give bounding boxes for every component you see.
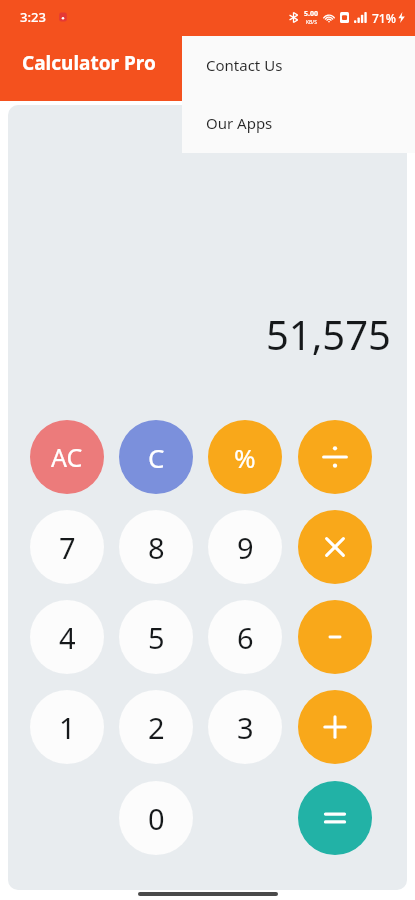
staticText: 7	[59, 528, 76, 567]
staticText: 1	[59, 708, 76, 747]
button[interactable]: 0	[119, 781, 193, 855]
button[interactable]: Multiply	[298, 510, 372, 584]
button[interactable]: C	[119, 420, 193, 494]
button[interactable]: Our Apps	[182, 94, 415, 152]
staticText: 6	[237, 618, 254, 657]
button[interactable]: Divide	[298, 420, 372, 494]
button[interactable]: 9	[208, 510, 282, 584]
staticText: 4	[59, 618, 76, 657]
staticText: Calculator Pro	[22, 50, 156, 76]
staticText: %	[234, 440, 256, 475]
button[interactable]: 8	[119, 510, 193, 584]
staticText: 71%	[372, 10, 396, 26]
staticText: Contact Us	[206, 55, 283, 75]
button[interactable]: Equals	[298, 781, 372, 855]
button[interactable]: 3	[208, 690, 282, 764]
button[interactable]: 4	[30, 600, 104, 674]
staticText: 2	[148, 708, 165, 747]
staticText: 51,575	[265, 307, 391, 361]
staticText: 5	[148, 618, 165, 657]
button[interactable]: 1	[30, 690, 104, 764]
staticText: 3:23	[20, 8, 46, 26]
button[interactable]: 7	[30, 510, 104, 584]
staticText: C	[148, 440, 165, 475]
button[interactable]: 5	[119, 600, 193, 674]
button[interactable]: AC	[30, 420, 104, 494]
staticText: 5.00	[304, 9, 318, 19]
staticText: 0	[148, 799, 165, 838]
button[interactable]: 6	[208, 600, 282, 674]
staticText: 9	[237, 528, 254, 567]
staticText: 3	[237, 708, 254, 747]
staticText: Our Apps	[206, 113, 273, 133]
staticText: 8	[148, 528, 165, 567]
button[interactable]: Minus	[298, 600, 372, 674]
button[interactable]: %	[208, 420, 282, 494]
button[interactable]: Plus	[298, 690, 372, 764]
staticText: AC	[51, 440, 83, 474]
staticText: KB/S	[306, 19, 317, 26]
button[interactable]: Contact Us	[182, 36, 415, 94]
button[interactable]: 2	[119, 690, 193, 764]
